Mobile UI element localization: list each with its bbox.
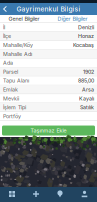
button[interactable]: Mahalle Adı [0,50,97,59]
staticText: Kocabaş [73,42,94,48]
button[interactable]: İl [0,23,97,32]
button[interactable]: Add [24,187,48,202]
staticText: Arsa [82,86,94,93]
staticText: 1902 [83,68,94,75]
staticText: Parsel [3,68,18,75]
button[interactable]: İşlem Tipi [0,103,97,112]
staticText: 885,00 [78,77,94,84]
staticText: Emlak [3,86,18,93]
staticText: Mahalle Adı [3,51,32,57]
staticText: Satılık [80,104,94,111]
button[interactable]: Mahalle/Köy [0,41,97,50]
staticText: Ada [3,60,13,66]
staticText: Denizli [78,24,94,30]
staticText: Mahalle/Köy [3,42,33,48]
button[interactable]: Map [48,187,72,202]
button[interactable]: İlçe [0,32,97,41]
button[interactable]: Back [0,3,11,15]
staticText: Taşınmaz Ekle [30,127,66,134]
button[interactable]: Parsel [0,67,97,76]
button[interactable]: Tapu Alanı [0,76,97,85]
button[interactable]: Emlak [0,85,97,94]
button[interactable]: Taşınmaz Ekle [2,125,95,135]
staticText: Portföy [3,113,21,119]
staticText: Diğer Bilgiler [57,15,87,22]
staticText: Kayalı [79,95,94,102]
button[interactable]: Profile [72,187,97,202]
staticText: Gayrimenkul Bilgisi [16,5,80,13]
button[interactable]: Home [0,187,24,202]
button[interactable]: Diğer Bilgiler [48,15,97,22]
staticText: Honaz [78,33,94,39]
button[interactable]: Genel Bilgiler [0,15,48,22]
button[interactable]: Portföy [0,112,97,121]
button[interactable]: Mevkii [0,94,97,103]
staticText: İl [3,24,5,30]
staticText: İşlem Tipi [3,104,26,111]
staticText: Mevkii [3,95,19,102]
staticText: İlçe [3,33,11,39]
staticText: Genel Bilgiler [8,15,39,22]
button[interactable]: Ada [0,59,97,67]
staticText: Tapu Alanı [3,77,29,84]
